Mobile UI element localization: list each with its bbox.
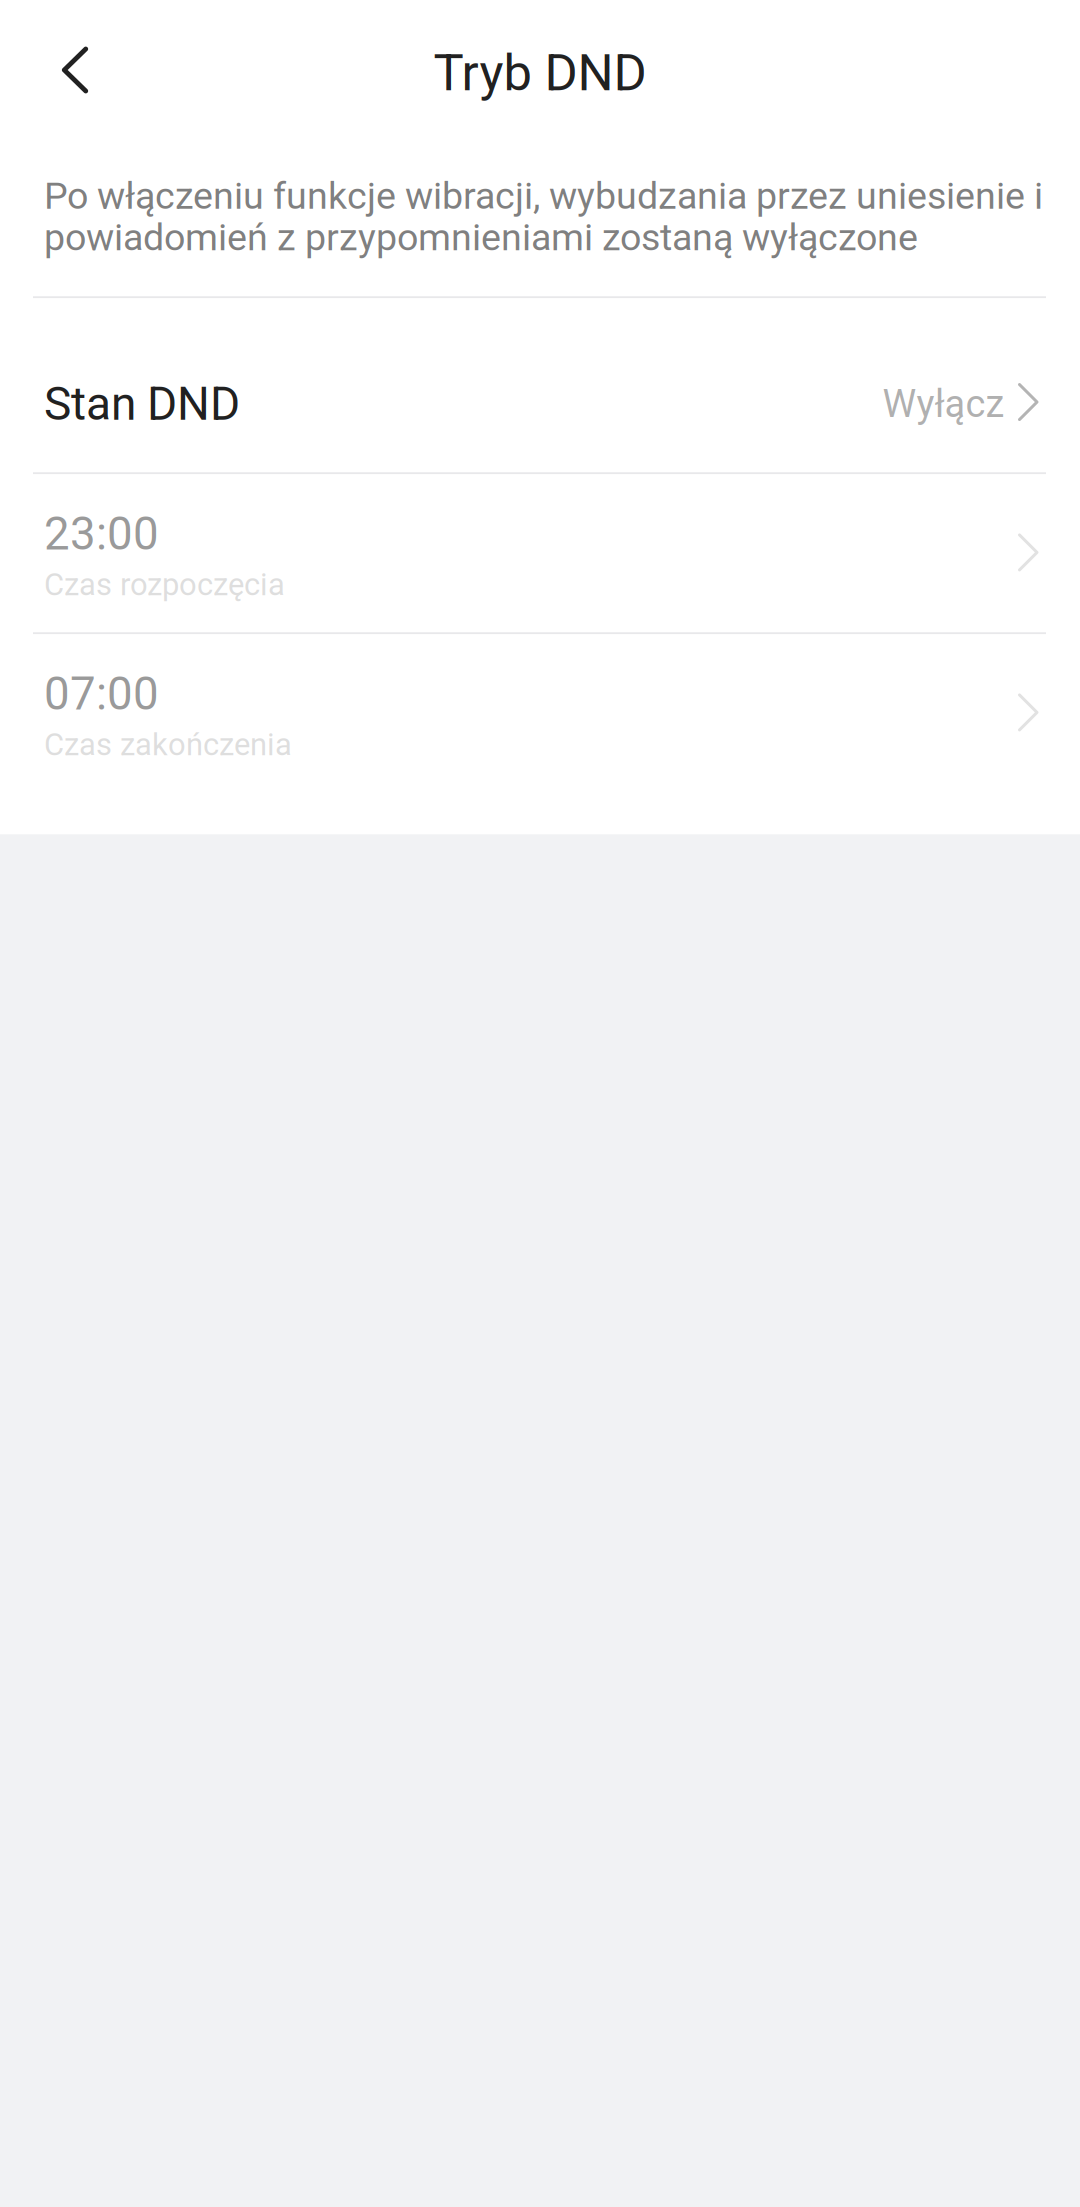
staticText: Czas zakończenia (44, 726, 292, 763)
staticText: Tryb DND (433, 43, 646, 103)
staticText: Wyłącz (882, 382, 1004, 426)
staticText: 23:00 (44, 507, 159, 560)
button[interactable]: 07:00 (0, 634, 1080, 792)
staticText: Czas rozpoczęcia (44, 566, 285, 603)
button[interactable]: Stan DND (0, 298, 1080, 472)
button[interactable]: 23:00 (0, 474, 1080, 632)
staticText: Po włączeniu funkcje wibracji, wybudzani… (44, 175, 1043, 258)
staticText: Stan DND (44, 377, 240, 431)
staticText: 07:00 (44, 667, 159, 720)
button[interactable]: Back (0, 10, 150, 136)
